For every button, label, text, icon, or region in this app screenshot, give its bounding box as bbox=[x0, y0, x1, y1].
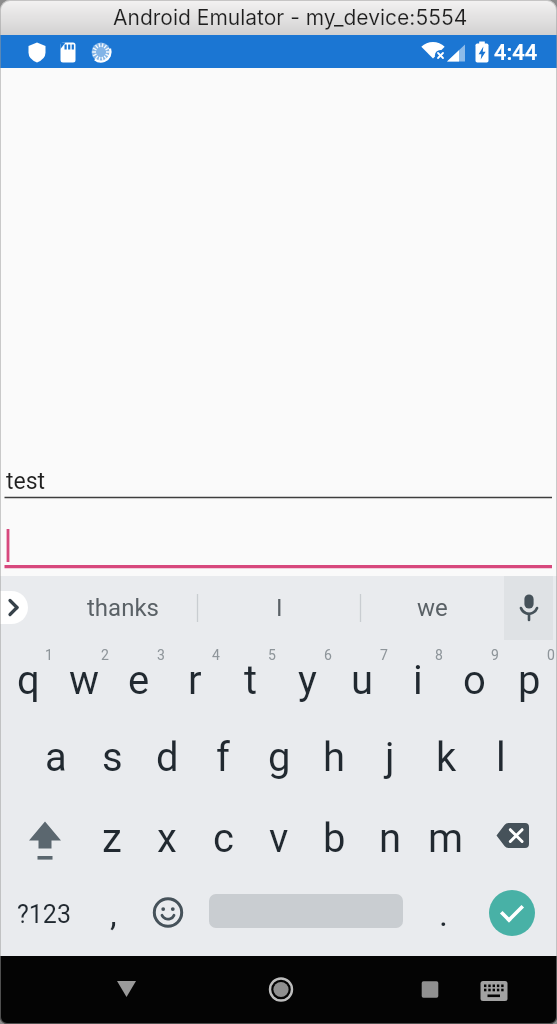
staticText: f bbox=[216, 734, 230, 781]
button[interactable]: z bbox=[84, 800, 140, 877]
staticText: u bbox=[351, 657, 374, 704]
staticText: t bbox=[244, 657, 258, 704]
button[interactable] bbox=[470, 967, 518, 1015]
staticText: 4:44 bbox=[494, 40, 538, 66]
button[interactable]: f bbox=[195, 718, 251, 796]
staticText: Android Emulator - my_device:5554 bbox=[113, 5, 468, 30]
staticText: . bbox=[439, 894, 448, 934]
staticText: i bbox=[413, 657, 423, 704]
staticText: , bbox=[110, 894, 117, 934]
button[interactable]: s bbox=[84, 718, 140, 796]
staticText: 8 bbox=[435, 647, 443, 663]
staticText: l bbox=[496, 734, 506, 781]
staticText: s bbox=[102, 734, 123, 781]
button[interactable] bbox=[0, 458, 557, 502]
button[interactable]: g bbox=[251, 718, 307, 796]
button[interactable] bbox=[0, 795, 84, 872]
button[interactable]: n bbox=[362, 800, 418, 877]
button[interactable]: q bbox=[0, 642, 56, 719]
button[interactable]: k bbox=[418, 718, 474, 796]
staticText: 0 bbox=[547, 647, 555, 663]
button[interactable]: y bbox=[279, 642, 335, 719]
staticText: thanks bbox=[87, 594, 159, 622]
button[interactable]: v bbox=[251, 800, 307, 877]
staticText: 2 bbox=[101, 647, 109, 663]
staticText: I bbox=[276, 594, 283, 622]
button[interactable]: e bbox=[111, 642, 167, 719]
staticText: g bbox=[268, 734, 291, 781]
staticText: b bbox=[323, 815, 346, 862]
button[interactable] bbox=[489, 890, 535, 936]
button[interactable]: t bbox=[223, 642, 279, 719]
staticText: c bbox=[213, 815, 234, 862]
staticText: k bbox=[436, 734, 457, 781]
button[interactable] bbox=[138, 872, 198, 956]
staticText: j bbox=[385, 734, 395, 781]
button[interactable]: d bbox=[139, 718, 195, 796]
button[interactable]: . bbox=[418, 872, 468, 956]
staticText: 1 bbox=[45, 647, 53, 663]
staticText: h bbox=[323, 734, 346, 781]
staticText: test bbox=[6, 468, 46, 495]
button[interactable] bbox=[257, 965, 305, 1013]
button[interactable]: I bbox=[198, 576, 360, 640]
button[interactable] bbox=[102, 965, 150, 1013]
staticText: 4 bbox=[212, 647, 220, 663]
staticText: q bbox=[17, 657, 40, 704]
button[interactable]: l bbox=[473, 718, 529, 796]
staticText: 3 bbox=[157, 647, 165, 663]
staticText: we bbox=[417, 594, 448, 622]
button[interactable]: m bbox=[418, 800, 474, 877]
staticText: ?123 bbox=[17, 900, 71, 929]
staticText: z bbox=[102, 815, 122, 862]
staticText: d bbox=[156, 734, 179, 781]
staticText: r bbox=[188, 657, 202, 704]
staticText: a bbox=[45, 734, 67, 781]
staticText: o bbox=[463, 657, 486, 704]
button[interactable]: r bbox=[167, 642, 223, 719]
button[interactable]: c bbox=[195, 800, 251, 877]
staticText: v bbox=[269, 815, 289, 862]
button[interactable] bbox=[0, 523, 557, 571]
button[interactable]: a bbox=[28, 718, 84, 796]
button[interactable]: p bbox=[501, 642, 557, 719]
button[interactable]: w bbox=[56, 642, 112, 719]
staticText: 5 bbox=[268, 647, 276, 663]
button[interactable]: i bbox=[390, 642, 446, 719]
staticText: x bbox=[157, 815, 177, 862]
button[interactable] bbox=[406, 965, 454, 1013]
button[interactable]: h bbox=[306, 718, 362, 796]
staticText: e bbox=[128, 657, 150, 704]
staticText: 6 bbox=[324, 647, 332, 663]
staticText: 9 bbox=[491, 647, 499, 663]
button[interactable]: , bbox=[88, 872, 138, 956]
button[interactable]: ?123 bbox=[0, 872, 88, 956]
staticText: n bbox=[379, 815, 402, 862]
staticText: y bbox=[298, 657, 317, 704]
button[interactable]: x bbox=[139, 800, 195, 877]
button[interactable]: thanks bbox=[48, 576, 198, 640]
button[interactable]: we bbox=[360, 576, 504, 640]
button[interactable]: b bbox=[306, 800, 362, 877]
staticText: m bbox=[428, 815, 464, 862]
button[interactable] bbox=[474, 795, 557, 872]
button[interactable]: u bbox=[334, 642, 390, 719]
button[interactable] bbox=[504, 576, 553, 640]
staticText: w bbox=[69, 657, 100, 704]
button[interactable]: j bbox=[362, 718, 418, 796]
button[interactable]: o bbox=[446, 642, 502, 719]
staticText: p bbox=[518, 657, 541, 704]
staticText: 7 bbox=[380, 647, 388, 663]
button[interactable] bbox=[0, 591, 28, 624]
